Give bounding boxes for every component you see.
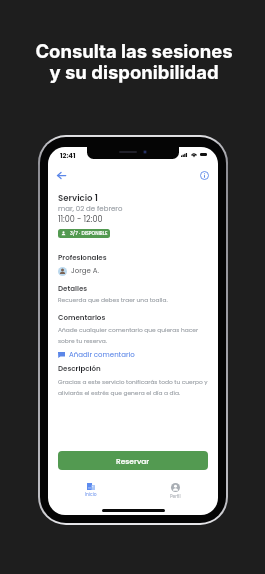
staticText: Inicio — [85, 491, 97, 497]
staticText: Profesionales — [58, 253, 107, 263]
staticText: Comentarios — [58, 313, 106, 323]
staticText: Añade cualquier comentario que quieras h… — [58, 326, 199, 345]
staticText: Perfil — [170, 493, 181, 498]
staticText: Gracias a este servicio tonificarás todo… — [58, 378, 208, 397]
button[interactable]: Information — [195, 166, 213, 184]
staticText: 12:41 — [60, 151, 76, 161]
staticText: Servicio 1 — [58, 192, 98, 204]
button[interactable]: Inicio — [48, 478, 133, 498]
staticText: Descripción — [58, 364, 101, 374]
staticText: 3/7 · DISPONIBLE — [70, 230, 108, 237]
staticText: Reservar — [116, 456, 150, 466]
staticText: 11:00 - 12:00 — [58, 214, 103, 225]
button[interactable]: Reservar — [58, 451, 208, 470]
button[interactable]: Perfil — [133, 478, 218, 498]
staticText: Detalles — [58, 284, 88, 294]
staticText: mar, 02 de febrero — [58, 204, 123, 214]
staticText: Consulta las sesiones y su disponibilida… — [35, 40, 233, 84]
button[interactable]: Añadir comentario — [58, 350, 135, 360]
button[interactable]: Back — [52, 166, 70, 184]
staticText: Añadir comentario — [69, 350, 135, 360]
staticText: Jorge A. — [71, 266, 99, 276]
staticText: Recuerda que debes traer una toalla. — [58, 296, 168, 304]
